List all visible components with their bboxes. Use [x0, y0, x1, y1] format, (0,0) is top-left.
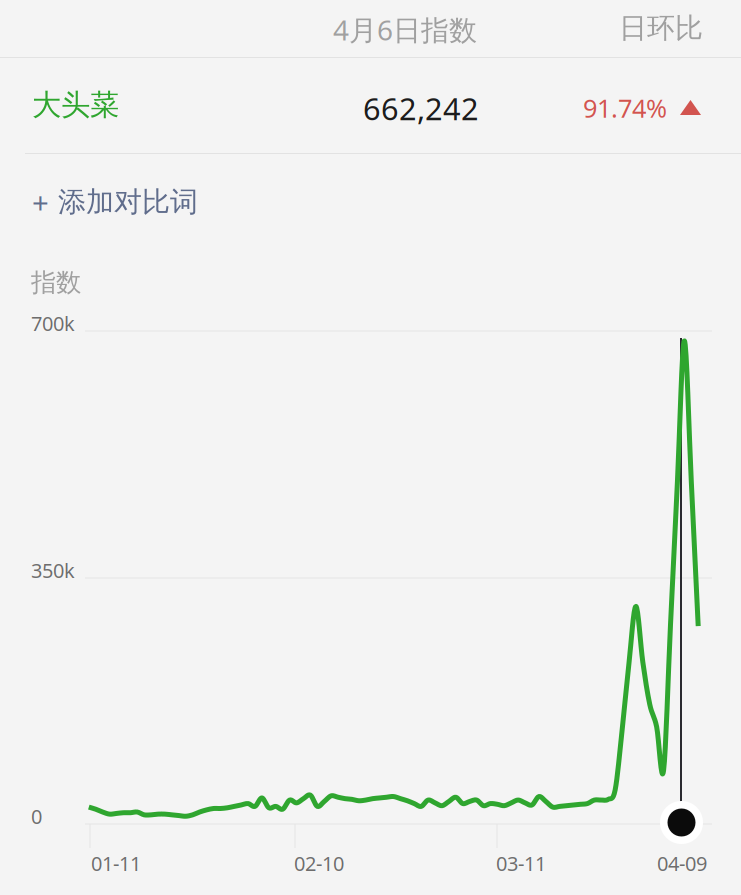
staticText: 4月6日指数 — [333, 11, 477, 48]
staticText: 04-09 — [657, 850, 707, 877]
button[interactable]: 日环比 — [0, 0, 741, 895]
staticText: + — [32, 182, 49, 221]
button[interactable]: 4月6日指数 — [0, 0, 741, 895]
staticText: 0 — [31, 803, 42, 830]
staticText: 日环比 — [619, 11, 703, 45]
button[interactable]: Selected data point, 04-09 — [0, 0, 741, 895]
staticText: 350k — [31, 557, 75, 584]
button[interactable]: + — [0, 0, 741, 895]
staticText: 01-11 — [91, 850, 141, 877]
staticText: 662,242 — [363, 88, 479, 129]
staticText: 添加对比词 — [58, 185, 198, 219]
staticText: 700k — [31, 310, 75, 337]
staticText: 91.74% — [583, 91, 667, 125]
staticText: 03-11 — [496, 850, 546, 877]
staticText: 指数 — [31, 267, 81, 298]
staticText: 大头菜 — [32, 87, 119, 123]
staticText: 02-10 — [294, 850, 344, 877]
